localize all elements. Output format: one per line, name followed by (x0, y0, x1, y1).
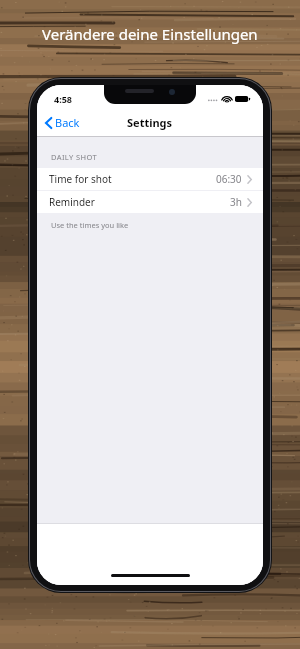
staticText: Reminder (49, 195, 95, 209)
staticText: Use the times you like (51, 220, 129, 230)
staticText: DAILY SHOT (51, 152, 98, 162)
staticText: 4:58 (54, 93, 72, 105)
staticText: 06:30 (216, 172, 242, 186)
other: Open Reminder (247, 198, 252, 207)
staticText: Time for shot (49, 172, 112, 186)
staticText: Verändere deine Einstellungen (42, 24, 258, 44)
staticText: 3h (230, 195, 242, 209)
staticText: Back (55, 115, 80, 130)
button[interactable]: Reminder (37, 191, 263, 213)
other: Open Time for shot (247, 175, 252, 184)
staticText: Settings (127, 115, 173, 130)
button[interactable]: Time for shot (37, 168, 263, 190)
button[interactable]: Back (37, 110, 88, 135)
